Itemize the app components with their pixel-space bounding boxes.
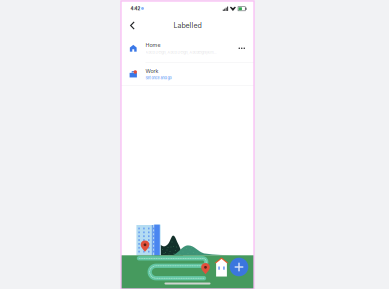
staticText: Labelled bbox=[173, 21, 201, 30]
staticText: 4:42 bbox=[130, 6, 140, 11]
button[interactable]: Work bbox=[121, 62, 254, 85]
button[interactable]: Home bbox=[121, 34, 254, 62]
staticText: Set once and go bbox=[145, 76, 171, 80]
staticText: Abcd Defgh, Abcd Defgh, Abcdefghijklm... bbox=[145, 50, 216, 55]
button[interactable]: Add place bbox=[230, 258, 248, 276]
button[interactable]: Back bbox=[123, 16, 141, 34]
staticText: Home bbox=[145, 42, 160, 48]
staticText: Work bbox=[145, 68, 158, 74]
